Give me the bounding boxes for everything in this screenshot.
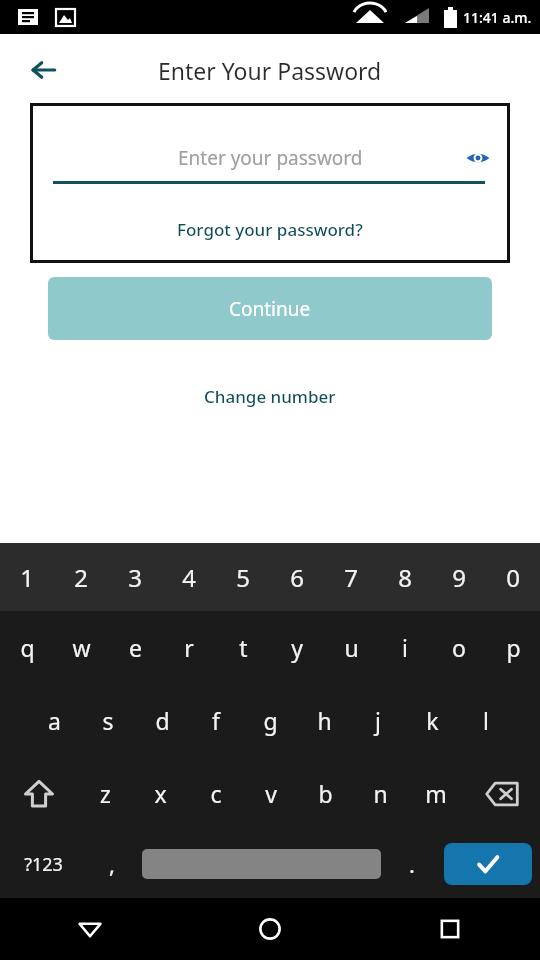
staticText: 7 <box>344 561 358 594</box>
staticText: , <box>109 849 115 879</box>
button[interactable]: . <box>387 830 436 898</box>
staticText: a <box>48 705 61 736</box>
staticText: 0 <box>506 561 520 594</box>
button[interactable]: i <box>378 611 432 684</box>
button[interactable]: , <box>87 830 136 898</box>
button[interactable]: b <box>298 757 353 830</box>
button[interactable]: 8 <box>378 543 432 611</box>
staticText: Continue <box>229 296 311 322</box>
button[interactable]: 3 <box>108 543 162 611</box>
button[interactable]: Shift <box>0 757 78 830</box>
button[interactable]: 9 <box>432 543 486 611</box>
button[interactable]: t <box>216 611 270 684</box>
staticText: g <box>263 705 278 736</box>
staticText: 11:41 a.m. <box>463 8 532 27</box>
button[interactable]: 0 <box>486 543 540 611</box>
button[interactable]: Home <box>180 898 360 960</box>
button[interactable]: 5 <box>216 543 270 611</box>
staticText: d <box>155 705 170 736</box>
button[interactable]: Forgot your password? <box>171 212 369 247</box>
staticText: y <box>291 632 303 663</box>
button[interactable]: f <box>189 684 243 757</box>
staticText: Enter Your Password <box>158 55 382 86</box>
staticText: Change number <box>204 385 336 408</box>
staticText: w <box>72 632 91 663</box>
staticText: p <box>506 632 521 663</box>
button[interactable]: n <box>353 757 408 830</box>
button[interactable]: z <box>78 757 133 830</box>
button[interactable]: Enter <box>444 843 532 885</box>
staticText: s <box>102 705 114 736</box>
staticText: 5 <box>236 561 250 594</box>
button[interactable]: u <box>324 611 378 684</box>
staticText: n <box>373 778 388 809</box>
staticText: j <box>375 705 381 736</box>
staticText: 1 <box>20 561 34 594</box>
staticText: o <box>452 632 466 663</box>
button[interactable]: Change number <box>196 377 344 416</box>
staticText: c <box>210 778 222 809</box>
staticText: 6 <box>290 561 304 594</box>
staticText: . <box>409 849 415 879</box>
button[interactable]: Backspace <box>463 757 540 830</box>
staticText: f <box>212 705 220 736</box>
button[interactable]: a <box>27 684 81 757</box>
staticText: t <box>239 632 248 663</box>
button[interactable]: 1 <box>0 543 54 611</box>
button[interactable]: d <box>135 684 189 757</box>
button[interactable]: v <box>243 757 298 830</box>
button[interactable]: s <box>81 684 135 757</box>
staticText: e <box>129 632 142 663</box>
button[interactable]: h <box>297 684 351 757</box>
button[interactable]: w <box>54 611 108 684</box>
button[interactable]: y <box>270 611 324 684</box>
button[interactable]: x <box>133 757 188 830</box>
button[interactable]: 7 <box>324 543 378 611</box>
button[interactable]: r <box>162 611 216 684</box>
staticText: Enter your password <box>178 145 363 171</box>
button[interactable]: p <box>486 611 540 684</box>
staticText: m <box>425 778 447 809</box>
staticText: i <box>402 632 408 663</box>
staticText: k <box>426 705 439 736</box>
staticText: v <box>265 778 277 809</box>
button[interactable]: ?123 <box>0 830 87 898</box>
button[interactable]: m <box>408 757 463 830</box>
staticText: r <box>184 632 194 663</box>
button[interactable]: Back <box>22 49 64 91</box>
button[interactable]: k <box>405 684 459 757</box>
staticText: h <box>317 705 332 736</box>
button[interactable]: Space <box>142 849 381 879</box>
staticText: 2 <box>74 561 88 594</box>
button[interactable]: 4 <box>162 543 216 611</box>
button[interactable]: Back <box>0 898 180 960</box>
button[interactable]: l <box>459 684 513 757</box>
button[interactable]: c <box>188 757 243 830</box>
button[interactable]: q <box>0 611 54 684</box>
button[interactable]: Continue <box>48 277 492 340</box>
staticText: Forgot your password? <box>177 218 363 241</box>
staticText: ?123 <box>24 852 63 877</box>
staticText: q <box>20 632 35 663</box>
button[interactable]: 2 <box>54 543 108 611</box>
button[interactable]: j <box>351 684 405 757</box>
button[interactable]: e <box>108 611 162 684</box>
staticText: b <box>318 778 333 809</box>
button[interactable]: 6 <box>270 543 324 611</box>
staticText: u <box>344 632 359 663</box>
staticText: 3 <box>128 561 142 594</box>
staticText: 8 <box>398 561 412 594</box>
staticText: 9 <box>452 561 466 594</box>
button[interactable]: Recents <box>360 898 540 960</box>
staticText: 4 <box>182 561 196 594</box>
staticText: l <box>483 705 489 736</box>
staticText: z <box>100 778 111 809</box>
staticText: x <box>154 778 167 809</box>
button[interactable]: Show password <box>460 140 496 176</box>
button[interactable]: o <box>432 611 486 684</box>
button[interactable]: g <box>243 684 297 757</box>
